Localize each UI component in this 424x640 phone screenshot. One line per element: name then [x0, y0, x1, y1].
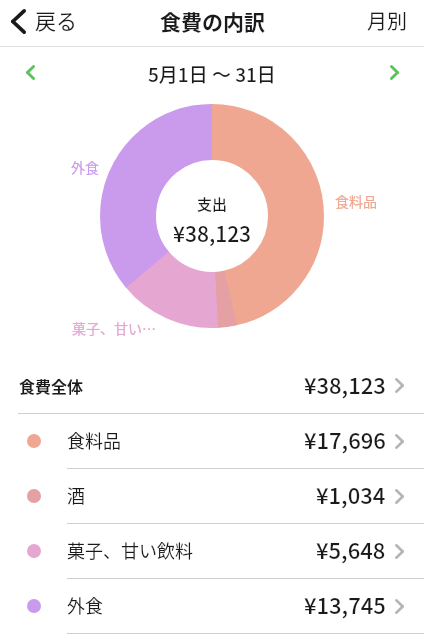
- staticText: 支出: [197, 193, 228, 215]
- staticText: ¥1,034: [316, 478, 386, 510]
- button[interactable]: 月別: [351, 3, 424, 44]
- staticText: 5月1日 〜 31日: [148, 60, 276, 88]
- staticText: 食料品: [67, 427, 121, 453]
- staticText: 菓子、甘い飲料: [67, 537, 193, 563]
- staticText: 酒: [67, 482, 85, 508]
- button[interactable]: 外食: [0, 579, 424, 633]
- staticText: 食料品: [335, 191, 377, 211]
- button[interactable]: Back: [0, 4, 87, 44]
- staticText: ¥38,123: [304, 368, 386, 400]
- staticText: 食費の内訳: [160, 6, 265, 36]
- staticText: ¥17,696: [304, 423, 386, 455]
- staticText: 戻る: [35, 5, 77, 35]
- button[interactable]: 食料品: [0, 414, 424, 468]
- staticText: 外食: [71, 157, 99, 177]
- button[interactable]: 酒: [0, 469, 424, 523]
- button[interactable]: Previous month: [14, 56, 46, 88]
- button[interactable]: Next month: [378, 56, 410, 88]
- staticText: 菓子、甘い…: [72, 318, 156, 338]
- staticText: 外食: [67, 592, 103, 618]
- staticText: 食費全体: [19, 374, 84, 397]
- staticText: ¥38,123: [173, 218, 252, 248]
- staticText: ¥5,648: [316, 533, 386, 565]
- button[interactable]: 食費全体: [0, 358, 424, 413]
- staticText: 月別: [367, 6, 407, 35]
- button[interactable]: 菓子、甘い飲料: [0, 524, 424, 578]
- staticText: ¥13,745: [304, 588, 386, 620]
